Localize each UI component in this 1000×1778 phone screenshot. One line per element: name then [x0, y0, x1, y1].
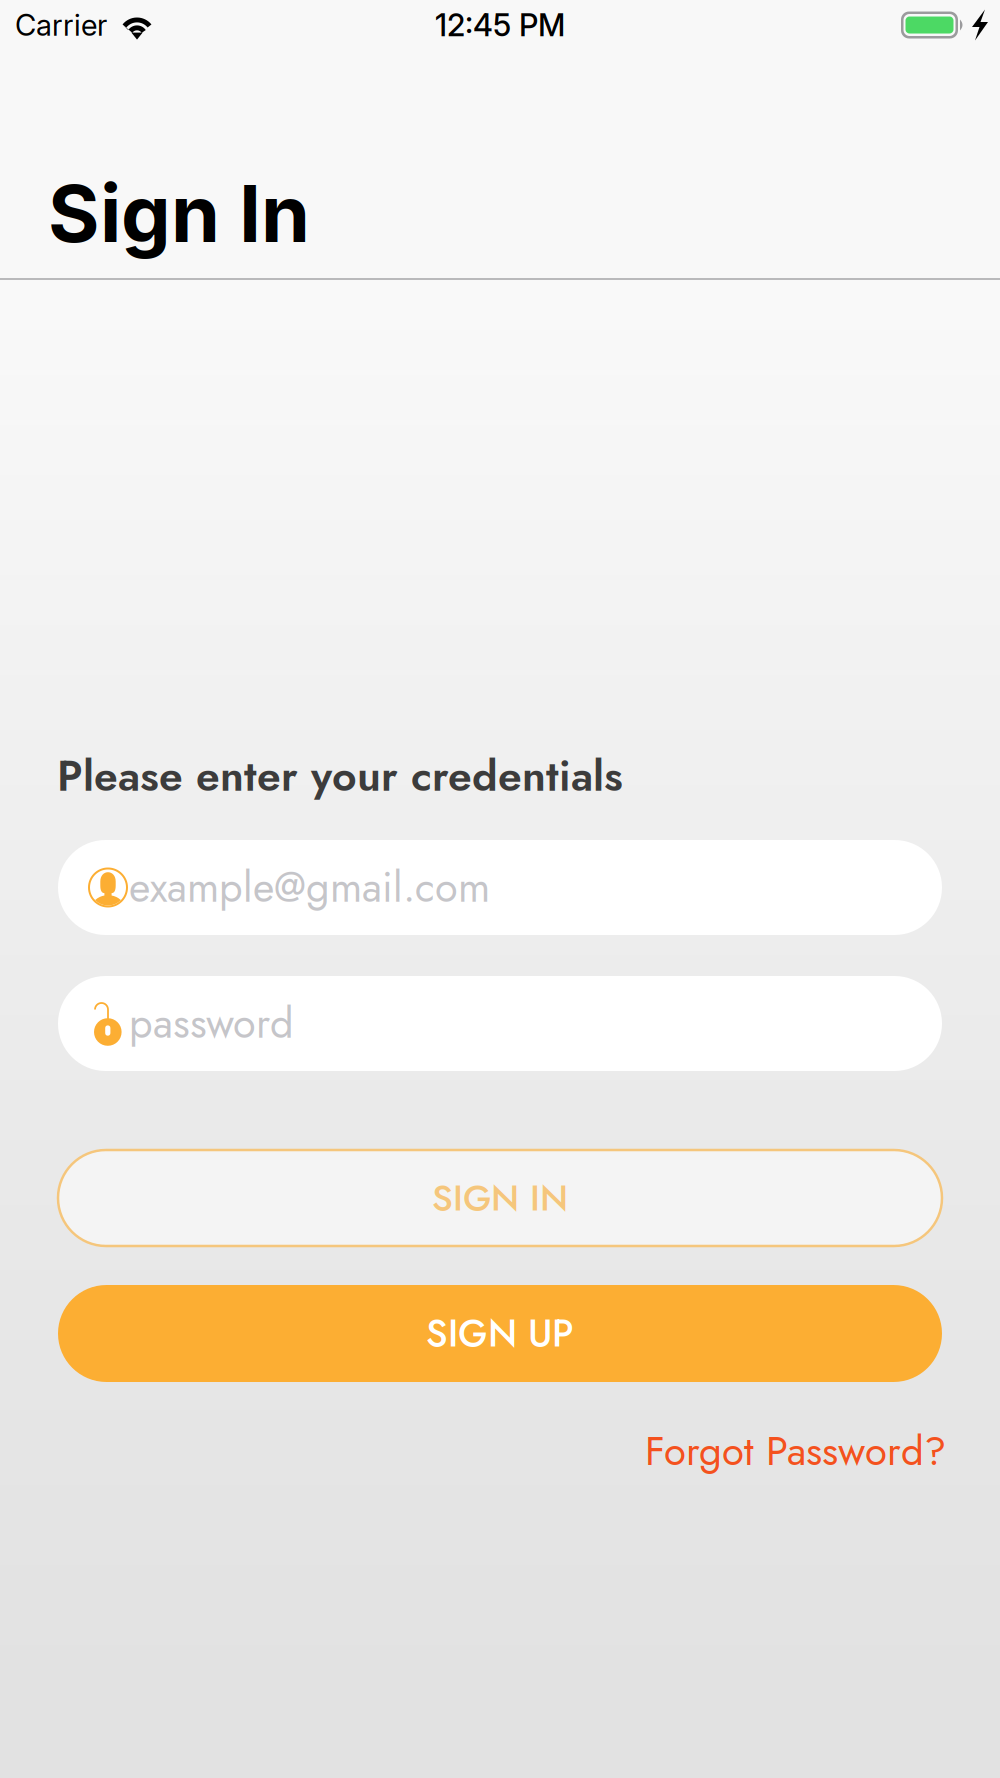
- staticText: SIGN UP: [426, 1306, 574, 1360]
- staticText: password: [129, 994, 294, 1053]
- button[interactable]: Forgot Password?: [645, 1422, 946, 1480]
- button[interactable]: SIGN IN: [58, 1150, 942, 1246]
- staticText: 12:45 PM: [435, 6, 565, 43]
- staticText: Carrier: [15, 7, 107, 43]
- staticText: Forgot Password?: [645, 1422, 946, 1480]
- staticText: example@gmail.com: [129, 858, 490, 917]
- staticText: Please enter your credentials: [57, 745, 623, 807]
- staticText: SIGN IN: [432, 1172, 568, 1224]
- button[interactable]: SIGN UP: [58, 1285, 942, 1382]
- staticText: Sign In: [48, 166, 310, 261]
